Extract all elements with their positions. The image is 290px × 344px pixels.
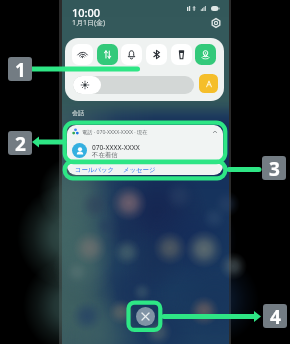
button[interactable]: Quick setting 5 [171, 44, 192, 65]
staticText: 3 [269, 156, 280, 180]
button[interactable]: 電話 · 070-XXXX-XXXX · 現在 [67, 125, 223, 160]
staticText: 1 [15, 57, 26, 81]
staticText: 10:00 [72, 5, 101, 20]
other: Status icons [187, 6, 227, 11]
staticText: 不在着信 [92, 151, 118, 159]
button[interactable]: コールバック [75, 166, 115, 174]
staticText: 2 [15, 131, 26, 155]
button[interactable]: Quick setting 6 [195, 44, 216, 65]
button[interactable]: メッセージ [123, 166, 156, 174]
staticText: コールバック [75, 166, 115, 174]
button[interactable]: Quick setting 3 [121, 44, 142, 65]
staticText: 電話 · 070-XXXX-XXXX · 現在 [82, 128, 148, 135]
button[interactable]: Quick setting 2 [97, 44, 118, 65]
staticText: 会話 [72, 109, 84, 117]
button[interactable]: Quick setting 1 [72, 44, 93, 65]
button[interactable]: Quick setting 4 [146, 44, 167, 65]
button[interactable]: Settings [208, 15, 224, 31]
staticText: 4 [270, 304, 281, 328]
staticText: メッセージ [123, 166, 156, 174]
staticText: 070-XXXX-XXXX [92, 143, 140, 152]
button[interactable]: Clear all notifications [136, 307, 155, 326]
staticText: 1月1日(金) [72, 18, 106, 28]
button[interactable]: Auto brightness [199, 74, 218, 93]
button[interactable]: Brightness [73, 76, 194, 94]
